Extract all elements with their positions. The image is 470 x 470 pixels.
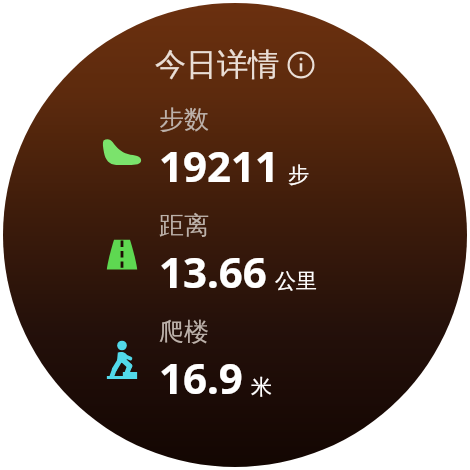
other: Steps (99, 126, 145, 172)
staticText: 步数 (159, 104, 209, 135)
staticText: 米 (251, 374, 272, 400)
other: Floors climbed (99, 338, 145, 384)
staticText: 16.9 (159, 349, 243, 406)
button[interactable]: 今日详情 (3, 45, 467, 84)
staticText: 13.66 (159, 243, 267, 300)
staticText: 爬楼 (159, 316, 209, 347)
staticText: 步 (288, 162, 309, 188)
staticText: 19211 (159, 137, 280, 194)
button[interactable]: Floors climbed (99, 316, 455, 406)
staticText: 距离 (159, 210, 209, 241)
button[interactable]: Steps (99, 104, 455, 194)
button[interactable]: Distance (99, 210, 455, 300)
staticText: 今日详情 (155, 45, 279, 84)
button[interactable]: Info (286, 50, 316, 80)
other: Distance (99, 232, 145, 278)
staticText: 公里 (275, 268, 317, 294)
